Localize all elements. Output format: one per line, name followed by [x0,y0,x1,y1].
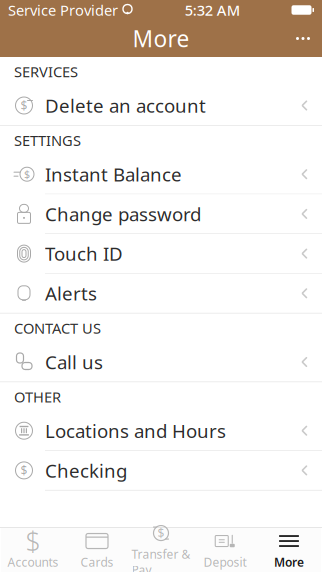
staticText: More [132,23,189,53]
staticText: Change password [45,201,201,226]
button[interactable]: More options [284,20,322,57]
staticText: Transfer & Pay [131,546,190,572]
button[interactable]: Locations and Hours [0,411,322,450]
button[interactable]: More [257,528,321,572]
staticText: OTHER [14,387,61,406]
staticText: $ [25,523,40,559]
button[interactable]: Deposit [193,528,257,572]
button[interactable]: Change password [0,194,322,233]
staticText: Call us [45,350,103,374]
staticText: Cards [80,554,113,570]
staticText: Locations and Hours [45,418,226,443]
staticText: More [274,554,304,570]
staticText: SERVICES [14,62,78,81]
button[interactable]: $ [0,155,322,194]
button[interactable]: Cards [65,528,129,572]
button[interactable]: $ [0,86,322,125]
staticText: CONTACT US [14,318,101,338]
button[interactable]: Alerts [0,274,322,313]
staticText: $ [20,97,27,113]
staticText: $ [20,462,27,478]
staticText: Instant Balance [45,162,182,187]
staticText: SETTINGS [14,130,81,150]
staticText: Alerts [45,281,97,306]
staticText: Accounts [7,554,58,570]
staticText: Service Provider [8,0,118,20]
staticText: 5:32 AM [185,0,240,20]
button[interactable]: Touch ID [0,234,322,273]
staticText: $ [157,525,164,541]
staticText: Checking [45,458,127,483]
button[interactable]: $ [1,528,65,572]
staticText: $ [24,167,30,181]
staticText: Delete an account [45,93,206,118]
button[interactable]: Call us [0,342,322,381]
staticText: Deposit [203,554,246,570]
button[interactable]: $ [0,451,322,490]
staticText: Touch ID [45,241,123,266]
button[interactable]: $ [129,528,193,572]
